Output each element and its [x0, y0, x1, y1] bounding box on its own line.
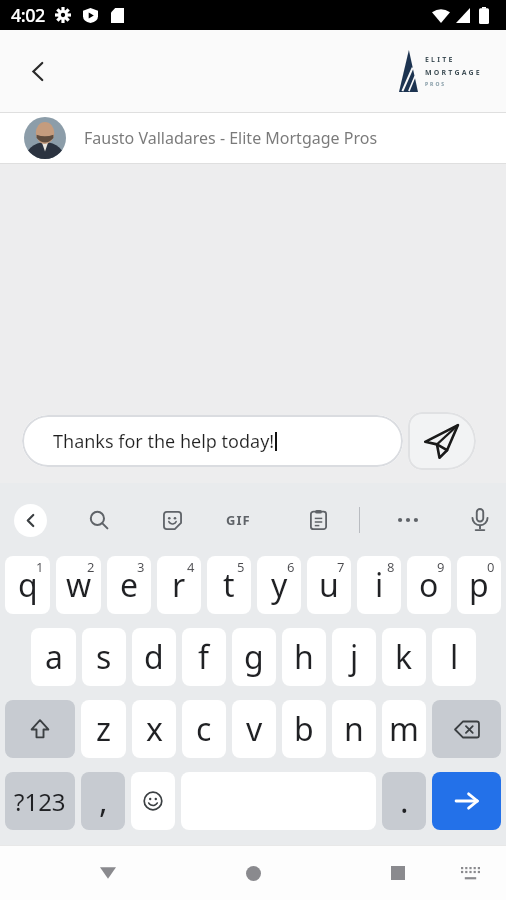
- staticText: o: [419, 563, 439, 607]
- button[interactable]: v: [232, 700, 276, 758]
- staticText: 4: [187, 558, 195, 576]
- button[interactable]: w: [56, 556, 101, 614]
- staticText: 1: [36, 558, 44, 576]
- button[interactable]: [131, 772, 175, 830]
- button[interactable]: k: [382, 628, 426, 686]
- button[interactable]: [88, 853, 128, 893]
- button[interactable]: [408, 412, 476, 470]
- button[interactable]: s: [82, 628, 126, 686]
- button[interactable]: [466, 506, 494, 534]
- button[interactable]: ,: [81, 772, 125, 830]
- button[interactable]: [450, 853, 490, 893]
- staticText: f: [198, 635, 210, 679]
- button[interactable]: l: [432, 628, 476, 686]
- staticText: ELITE: [425, 55, 455, 65]
- button[interactable]: y: [257, 556, 301, 614]
- button[interactable]: [85, 506, 113, 534]
- button[interactable]: [394, 506, 422, 534]
- staticText: i: [375, 563, 384, 607]
- staticText: v: [246, 707, 263, 751]
- staticText: ,: [99, 779, 108, 823]
- staticText: u: [319, 563, 339, 607]
- staticText: 4:02: [11, 3, 45, 28]
- staticText: m: [389, 707, 419, 751]
- staticText: g: [244, 635, 264, 679]
- staticText: r: [172, 563, 186, 607]
- staticText: 8: [387, 558, 395, 576]
- staticText: Fausto Valladares - Elite Mortgage Pros: [84, 127, 378, 149]
- staticText: k: [395, 635, 413, 679]
- button[interactable]: g: [232, 628, 276, 686]
- button[interactable]: c: [182, 700, 226, 758]
- button[interactable]: [432, 772, 501, 830]
- button[interactable]: Fausto Valladares - Elite Mortgage Pros: [0, 113, 506, 163]
- button[interactable]: a: [31, 628, 76, 686]
- staticText: q: [18, 563, 38, 607]
- button[interactable]: [304, 506, 332, 534]
- staticText: l: [450, 635, 459, 679]
- button[interactable]: ?123: [5, 772, 75, 830]
- button[interactable]: [233, 853, 273, 893]
- button[interactable]: Thanks for the help today!: [22, 415, 403, 467]
- button[interactable]: i: [357, 556, 401, 614]
- button[interactable]: z: [81, 700, 126, 758]
- button[interactable]: j: [332, 628, 376, 686]
- staticText: n: [344, 707, 364, 751]
- button[interactable]: [14, 504, 47, 537]
- button[interactable]: r: [157, 556, 201, 614]
- staticText: 5: [237, 558, 245, 576]
- staticText: t: [223, 563, 235, 607]
- button[interactable]: d: [132, 628, 176, 686]
- staticText: z: [96, 707, 112, 751]
- button[interactable]: q: [5, 556, 50, 614]
- staticText: 6: [287, 558, 295, 576]
- staticText: Thanks for the help today!: [53, 429, 275, 454]
- staticText: j: [350, 635, 359, 679]
- button[interactable]: [18, 51, 58, 91]
- staticText: 3: [137, 558, 145, 576]
- button[interactable]: o: [407, 556, 451, 614]
- staticText: c: [196, 707, 212, 751]
- staticText: y: [271, 563, 288, 607]
- staticText: MORTGAGE: [425, 68, 482, 78]
- staticText: e: [120, 563, 139, 607]
- button[interactable]: e: [107, 556, 151, 614]
- staticText: d: [144, 635, 164, 679]
- button[interactable]: b: [282, 700, 326, 758]
- button[interactable]: x: [132, 700, 176, 758]
- button[interactable]: GIF: [226, 511, 251, 529]
- staticText: 0: [487, 558, 495, 576]
- staticText: s: [96, 635, 112, 679]
- button[interactable]: t: [207, 556, 251, 614]
- button[interactable]: u: [307, 556, 351, 614]
- staticText: p: [469, 563, 489, 607]
- staticText: x: [146, 707, 163, 751]
- button[interactable]: [378, 853, 418, 893]
- staticText: w: [66, 563, 92, 607]
- button[interactable]: h: [282, 628, 326, 686]
- staticText: GIF: [226, 511, 251, 529]
- staticText: 9: [437, 558, 445, 576]
- staticText: 2: [87, 558, 95, 576]
- staticText: .: [400, 779, 409, 823]
- button[interactable]: f: [182, 628, 226, 686]
- button[interactable]: [158, 506, 186, 534]
- button[interactable]: n: [332, 700, 376, 758]
- staticText: 7: [337, 558, 345, 576]
- staticText: a: [45, 635, 63, 679]
- button[interactable]: [5, 700, 75, 758]
- staticText: ?123: [14, 785, 66, 818]
- staticText: PROS: [425, 81, 447, 88]
- button[interactable]: [432, 700, 501, 758]
- button[interactable]: m: [382, 700, 426, 758]
- button[interactable]: .: [382, 772, 426, 830]
- button[interactable]: p: [457, 556, 501, 614]
- staticText: b: [294, 707, 314, 751]
- staticText: h: [294, 635, 314, 679]
